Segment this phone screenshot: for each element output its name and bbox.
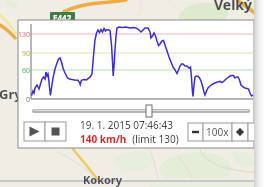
button[interactable]: Stop: [45, 122, 66, 141]
staticText: 0: [25, 95, 30, 105]
staticText: 140 km/h: [80, 132, 127, 146]
staticText: 100x: [206, 125, 229, 139]
button[interactable]: 100x: [203, 123, 232, 141]
staticText: Kokory: [83, 172, 123, 187]
staticText: 90: [21, 49, 30, 59]
button[interactable]: More: [248, 123, 255, 141]
staticText: Gryg: [0, 85, 30, 103]
staticText: 130: [17, 30, 30, 40]
button[interactable]: Playback position: [146, 105, 152, 117]
button[interactable]: Zoom out: [188, 123, 203, 141]
staticText: 60: [21, 66, 30, 76]
staticText: Velký: [214, 0, 253, 14]
staticText: 19. 1. 2015 07:46:43: [80, 118, 173, 132]
button[interactable]: Zoom in: [232, 123, 248, 141]
staticText: E442: [53, 12, 72, 21]
button[interactable]: Play: [24, 122, 45, 141]
staticText: (limit 130): [127, 132, 179, 146]
